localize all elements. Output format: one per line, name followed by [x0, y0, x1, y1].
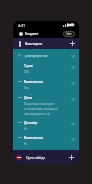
button[interactable]: розгорнути все — [13, 49, 79, 62]
staticText: Нi — [24, 127, 28, 131]
staticText: Звiт — [66, 32, 72, 36]
button[interactable]: New — [67, 153, 76, 162]
staticText: 4:31 — [18, 23, 26, 28]
button[interactable]: Виконання — [13, 78, 79, 94]
button[interactable]: Сума — [13, 62, 79, 78]
button[interactable]: Кошторис — [13, 38, 79, 49]
staticText: Сума — [24, 63, 33, 68]
button[interactable]: Profile — [19, 32, 23, 36]
staticText: Договiр — [24, 120, 38, 125]
staticText: Нi — [24, 142, 28, 146]
staticText: Так — [24, 86, 29, 90]
staticText: Виконання — [24, 135, 43, 140]
staticText: Податкова накладна та видаткова накладна… — [24, 102, 58, 116]
button[interactable]: Звiт — [63, 31, 75, 37]
button[interactable]: Договiр — [13, 119, 79, 134]
button[interactable]: Орти ойёдэ — [15, 153, 46, 162]
staticText: Кошторис — [25, 41, 43, 46]
staticText: Орти ойёдэ — [26, 155, 45, 160]
button[interactable]: Виконання — [13, 134, 79, 149]
staticText: Дата — [24, 95, 33, 100]
staticText: розгорнути все — [25, 54, 48, 58]
button[interactable]: Дата — [13, 94, 79, 119]
staticText: Виконання — [24, 79, 43, 84]
staticText: 000 — [24, 70, 30, 74]
button[interactable]: Add — [68, 39, 77, 48]
staticText: Бюджет — [25, 31, 39, 36]
